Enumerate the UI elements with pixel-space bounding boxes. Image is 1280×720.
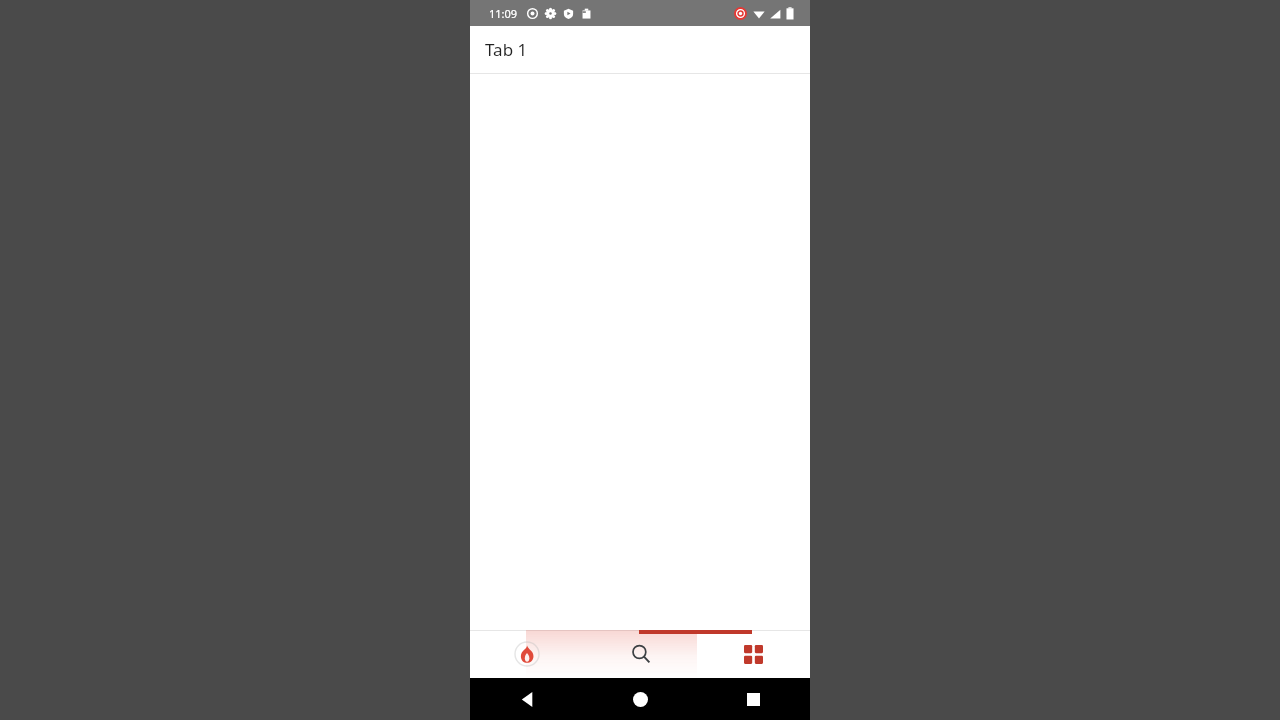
button[interactable]: Home (584, 678, 697, 720)
button[interactable]: Categories (697, 630, 810, 678)
button[interactable]: Back (470, 678, 584, 720)
button[interactable]: Search (584, 630, 697, 678)
staticText: Tab 1 (485, 38, 528, 61)
button[interactable]: Trending (470, 630, 584, 678)
staticText: 11:09 (489, 6, 518, 21)
button[interactable]: Recent apps (697, 678, 810, 720)
